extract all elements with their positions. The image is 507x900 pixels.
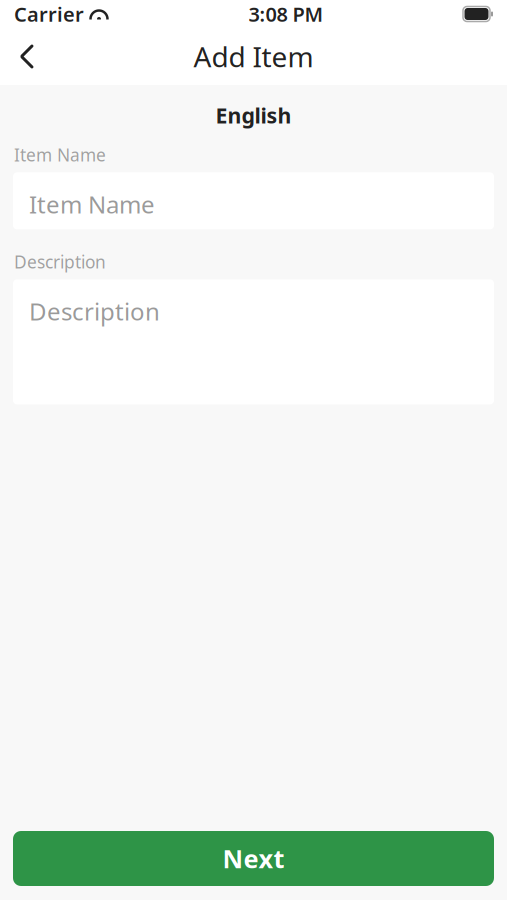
button[interactable]: Back xyxy=(0,31,54,81)
staticText: Description xyxy=(14,250,106,273)
button[interactable]: Next xyxy=(13,831,494,886)
staticText: Item Name xyxy=(29,188,155,220)
staticText: Carrier xyxy=(14,1,84,27)
staticText: English xyxy=(215,101,291,129)
staticText: Item Name xyxy=(14,143,106,166)
staticText: Next xyxy=(222,842,284,875)
staticText: Description xyxy=(29,295,160,327)
staticText: 3:08 PM xyxy=(248,1,323,27)
staticText: Add Item xyxy=(193,38,313,75)
